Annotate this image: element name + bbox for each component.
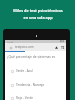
button[interactable]: Verde - Azul [5, 64, 66, 78]
staticText: Tendencia - Naranja [16, 83, 44, 87]
staticText: ▮▮▮ [60, 40, 64, 43]
staticText: 12:30 [7, 40, 14, 43]
button[interactable]: Share [55, 46, 58, 49]
staticText: Rojo - Verde [16, 96, 33, 100]
staticText: Miles de test psicotécnicos [13, 8, 63, 13]
button[interactable]: Site information [9, 46, 12, 49]
staticText: testpsico.com [15, 45, 34, 49]
button[interactable]: Rojo - Verde [5, 91, 66, 100]
staticText: en una sola app [23, 15, 53, 20]
staticText: Verde - Azul [16, 69, 33, 73]
staticText: TI [61, 45, 65, 50]
staticText: ¿Qué porcentaje de sistemas es correcto? [7, 55, 65, 59]
button[interactable]: Tendencia - Naranja [5, 78, 66, 92]
